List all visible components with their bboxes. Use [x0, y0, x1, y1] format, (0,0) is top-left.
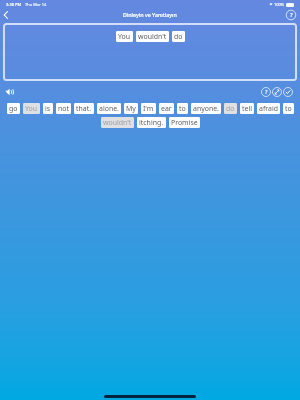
staticText: ear: [161, 104, 172, 113]
staticText: is: [45, 104, 51, 113]
staticText: 3:38 PM: [6, 2, 22, 7]
button[interactable]: anyone.: [191, 103, 221, 114]
button[interactable]: to: [177, 103, 188, 114]
button[interactable]: afraid: [257, 103, 280, 114]
button[interactable]: itching.: [137, 117, 166, 128]
button[interactable]: do: [224, 103, 237, 114]
staticText: ?: [290, 11, 293, 19]
button[interactable]: I'm: [141, 103, 156, 114]
button[interactable]: alone.: [97, 103, 121, 114]
staticText: I'm: [143, 104, 154, 113]
button[interactable]: wouldn't: [136, 31, 169, 42]
staticText: itching.: [139, 118, 164, 127]
staticText: ?: [265, 88, 268, 96]
button[interactable]: Back: [0, 9, 12, 21]
staticText: wouldn't: [138, 32, 167, 41]
staticText: do: [226, 104, 235, 113]
staticText: do: [174, 32, 183, 41]
button[interactable]: Hint: [260, 86, 272, 98]
staticText: not: [58, 104, 69, 113]
staticText: that.: [76, 104, 92, 113]
staticText: afraid: [259, 104, 278, 113]
staticText: Dinleyin ve Yanıtlayın: [123, 11, 177, 18]
button[interactable]: Play audio: [4, 86, 16, 98]
staticText: to: [179, 104, 186, 113]
button[interactable]: is: [43, 103, 53, 114]
button[interactable]: tell: [240, 103, 254, 114]
button[interactable]: You: [23, 103, 40, 114]
staticText: anyone.: [193, 104, 219, 113]
staticText: tell: [242, 104, 252, 113]
button[interactable]: that.: [74, 103, 94, 114]
button[interactable]: Help: [285, 9, 297, 21]
button[interactable]: Expand: [271, 86, 283, 98]
button[interactable]: go: [7, 103, 20, 114]
button[interactable]: Promise: [169, 117, 200, 128]
button[interactable]: My: [124, 103, 138, 114]
staticText: You: [118, 32, 131, 41]
button[interactable]: wouldn't: [101, 117, 134, 128]
staticText: You: [25, 104, 38, 113]
staticText: 100%: [274, 2, 285, 7]
button[interactable]: to: [283, 103, 294, 114]
staticText: alone.: [99, 104, 119, 113]
button[interactable]: do: [172, 31, 185, 42]
staticText: wouldn't: [103, 118, 132, 127]
staticText: go: [9, 104, 18, 113]
staticText: to: [285, 104, 292, 113]
button[interactable]: ear: [159, 103, 174, 114]
staticText: Promise: [171, 118, 198, 127]
button[interactable]: You: [116, 31, 133, 42]
staticText: My: [126, 104, 136, 113]
button[interactable]: Check: [282, 86, 294, 98]
staticText: Thu Mar 14: [25, 2, 47, 7]
button[interactable]: not: [56, 103, 71, 114]
